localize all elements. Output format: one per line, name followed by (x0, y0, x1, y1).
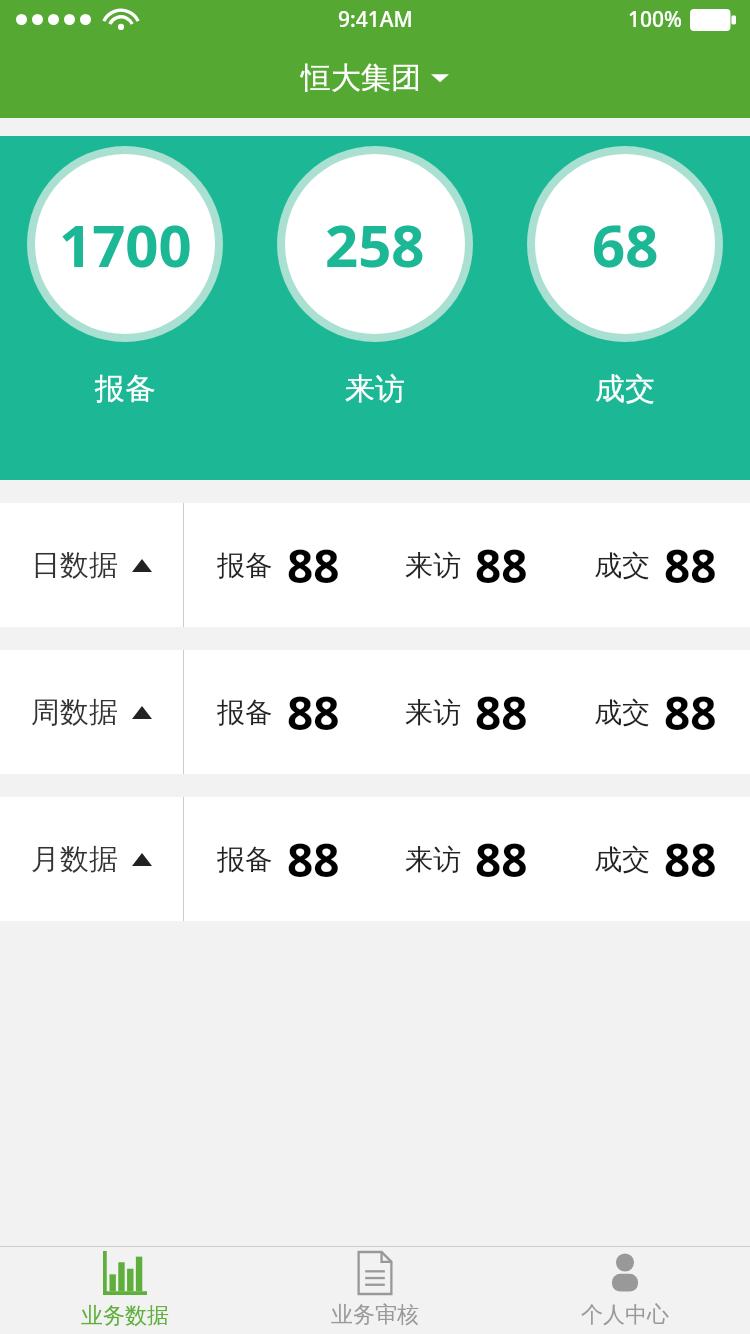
button[interactable]: 258 (277, 146, 473, 342)
button[interactable]: 个人中心 (500, 1246, 750, 1334)
staticText: 100% (628, 5, 682, 34)
staticText: 88 (287, 828, 340, 891)
staticText: 88 (664, 828, 717, 891)
staticText: 88 (664, 534, 717, 597)
staticText: 68 (592, 205, 659, 284)
staticText: 报备 (217, 548, 273, 583)
other: 业务审核 (354, 1252, 396, 1294)
staticText: 个人中心 (581, 1301, 669, 1329)
staticText: 来访 (345, 370, 405, 408)
staticText: 9:41AM (338, 5, 413, 34)
staticText: 1700 (59, 205, 192, 284)
staticText: 成交 (594, 695, 650, 730)
staticText: 88 (475, 534, 528, 597)
staticText: 日数据 (31, 547, 118, 584)
staticText: 恒大集团 (301, 59, 421, 97)
staticText: 88 (475, 828, 528, 891)
button[interactable]: 68 (527, 146, 723, 342)
staticText: 成交 (595, 370, 655, 408)
staticText: 成交 (594, 548, 650, 583)
staticText: 88 (475, 681, 528, 744)
staticText: 来访 (405, 548, 461, 583)
staticText: 周数据 (31, 694, 118, 731)
other: 个人中心 (604, 1252, 646, 1294)
staticText: 88 (287, 681, 340, 744)
button[interactable]: 恒大集团 (0, 38, 750, 118)
staticText: 来访 (405, 695, 461, 730)
staticText: 月数据 (31, 841, 118, 878)
staticText: 88 (287, 534, 340, 597)
button[interactable]: 1700 (27, 146, 223, 342)
staticText: 报备 (217, 695, 273, 730)
staticText: 成交 (594, 842, 650, 877)
staticText: 业务审核 (331, 1301, 419, 1329)
staticText: 业务数据 (81, 1302, 169, 1330)
staticText: 来访 (405, 842, 461, 877)
button[interactable]: 月数据 (0, 797, 750, 921)
staticText: 报备 (217, 842, 273, 877)
staticText: 报备 (95, 370, 155, 408)
button[interactable]: 日数据 (0, 503, 750, 627)
button[interactable]: 周数据 (0, 650, 750, 774)
button[interactable]: 业务数据 (0, 1246, 250, 1334)
staticText: 88 (664, 681, 717, 744)
other: 业务数据 (103, 1251, 147, 1295)
button[interactable]: 业务审核 (250, 1246, 500, 1334)
staticText: 258 (325, 205, 425, 284)
